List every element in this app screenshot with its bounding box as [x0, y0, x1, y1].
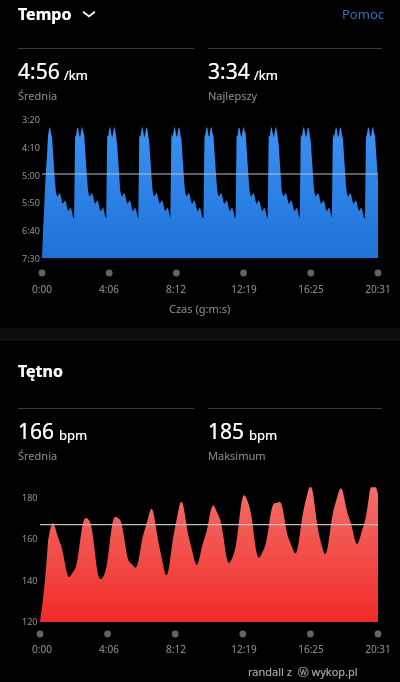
staticText: /km [64, 66, 88, 84]
staticText: Tempo [18, 3, 72, 25]
staticText: 8:12 [166, 282, 186, 296]
staticText: 140 [22, 574, 38, 586]
staticText: 20:31 [365, 282, 391, 296]
staticText: bpm [59, 426, 88, 444]
staticText: /km [254, 66, 278, 84]
staticText: Średnia [18, 448, 58, 463]
staticText: Pomoc [342, 5, 384, 23]
button[interactable]: 4:56 [18, 48, 194, 103]
staticText: 12:19 [231, 282, 257, 296]
staticText: 0:00 [32, 642, 52, 656]
staticText: 4:56 [18, 57, 60, 86]
staticText: 7:30 [22, 252, 40, 264]
button[interactable]: 166 [18, 408, 194, 463]
staticText: 5:50 [22, 196, 40, 208]
staticText: 12:19 [231, 642, 257, 656]
staticText: 160 [22, 532, 38, 544]
staticText: Czas (g:m:s) [169, 301, 231, 316]
button[interactable]: 3:34 [208, 48, 382, 103]
other: Expand metric selector [82, 9, 96, 19]
staticText: 8:12 [166, 642, 186, 656]
staticText: 4:06 [99, 282, 119, 296]
staticText: 4:06 [99, 642, 119, 656]
staticText: Maksimum [208, 448, 266, 463]
staticText: 166 [18, 417, 55, 446]
staticText: 180 [22, 491, 38, 503]
staticText: bpm [249, 426, 278, 444]
staticText: 120 [22, 615, 38, 627]
button[interactable]: 185 [208, 408, 382, 463]
staticText: 3:34 [208, 57, 250, 86]
staticText: 5:00 [22, 169, 40, 181]
staticText: 16:25 [298, 642, 324, 656]
button[interactable]: Tempo [18, 3, 100, 25]
staticText: 20:31 [365, 642, 391, 656]
staticText: 185 [208, 417, 245, 446]
staticText: Najlepszy [208, 88, 258, 103]
staticText: Średnia [18, 88, 58, 103]
staticText: 0:00 [32, 282, 52, 296]
staticText: 3:20 [22, 113, 40, 125]
button[interactable]: Tętno [18, 360, 63, 382]
staticText: 6:40 [22, 224, 40, 236]
staticText: Tętno [18, 360, 63, 382]
staticText: 4:10 [22, 141, 40, 153]
staticText: randall z ⓦ wykop.pl [248, 664, 358, 679]
staticText: 16:25 [298, 282, 324, 296]
button[interactable]: Pomoc [326, 1, 400, 27]
